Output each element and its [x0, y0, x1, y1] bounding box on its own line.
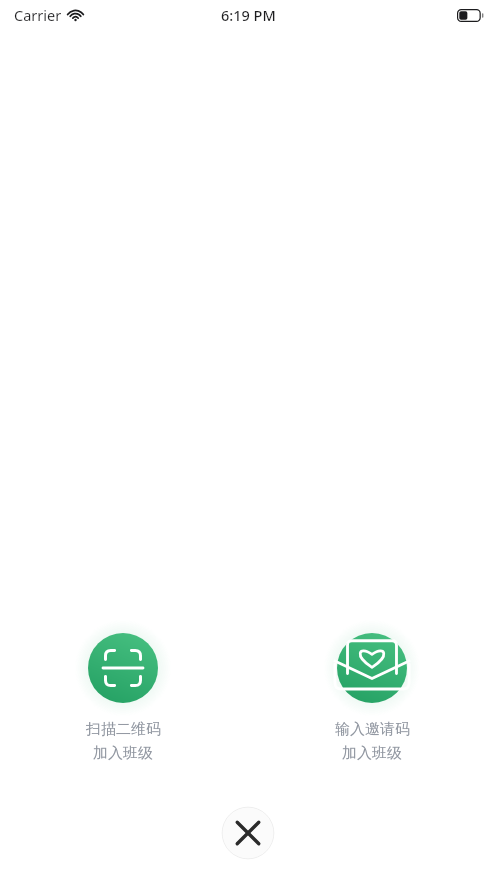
- staticText: 扫描二维码: [86, 720, 161, 739]
- button[interactable]: 扫描二维码加入班级: [48, 620, 198, 763]
- button[interactable]: 关闭: [221, 806, 275, 860]
- button[interactable]: 输入邀请码加入班级: [297, 620, 447, 763]
- staticText: 加入班级: [342, 744, 402, 763]
- staticText: 输入邀请码: [335, 720, 410, 739]
- staticText: 6:19 PM: [221, 5, 276, 25]
- staticText: 加入班级: [93, 744, 153, 763]
- staticText: Carrier: [14, 5, 62, 25]
